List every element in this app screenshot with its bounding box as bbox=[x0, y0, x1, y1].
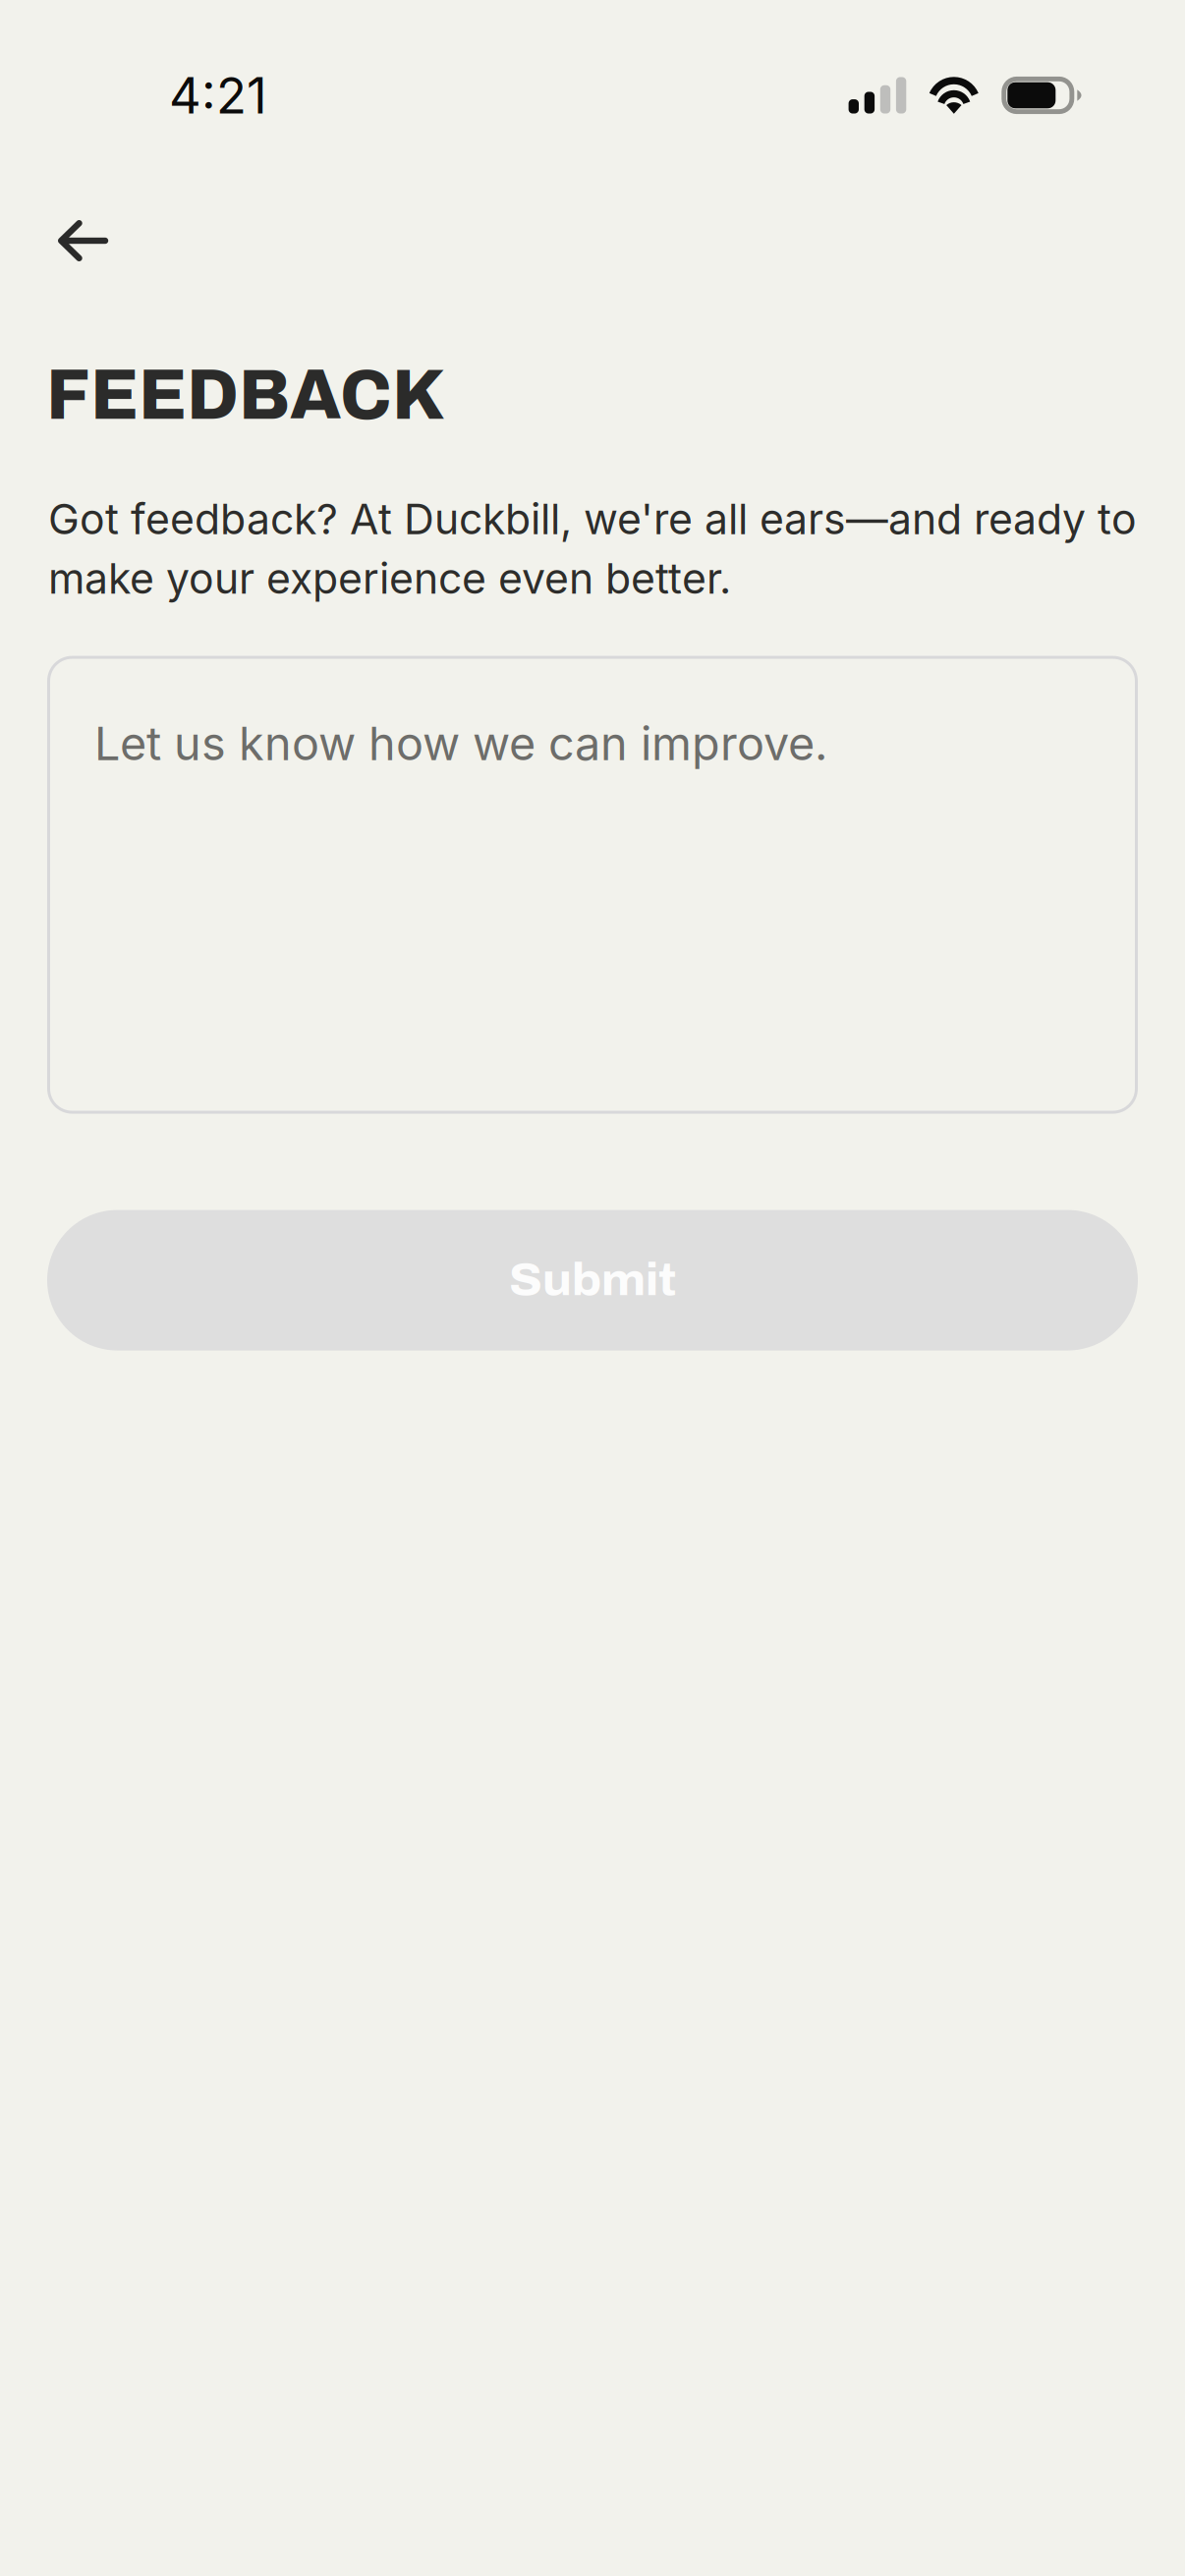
staticText: Submit bbox=[509, 1256, 676, 1304]
button[interactable]: Back bbox=[0, 197, 155, 284]
staticText: Got feedback? At Duckbill, we're all ear… bbox=[48, 493, 1137, 604]
button[interactable]: Submit bbox=[47, 1210, 1138, 1350]
staticText: FEEDBACK bbox=[46, 357, 445, 434]
staticText: 4:21 bbox=[169, 65, 267, 125]
staticText: Let us know how we can improve. bbox=[94, 716, 827, 771]
button[interactable]: Let us know how we can improve. bbox=[47, 656, 1138, 1114]
